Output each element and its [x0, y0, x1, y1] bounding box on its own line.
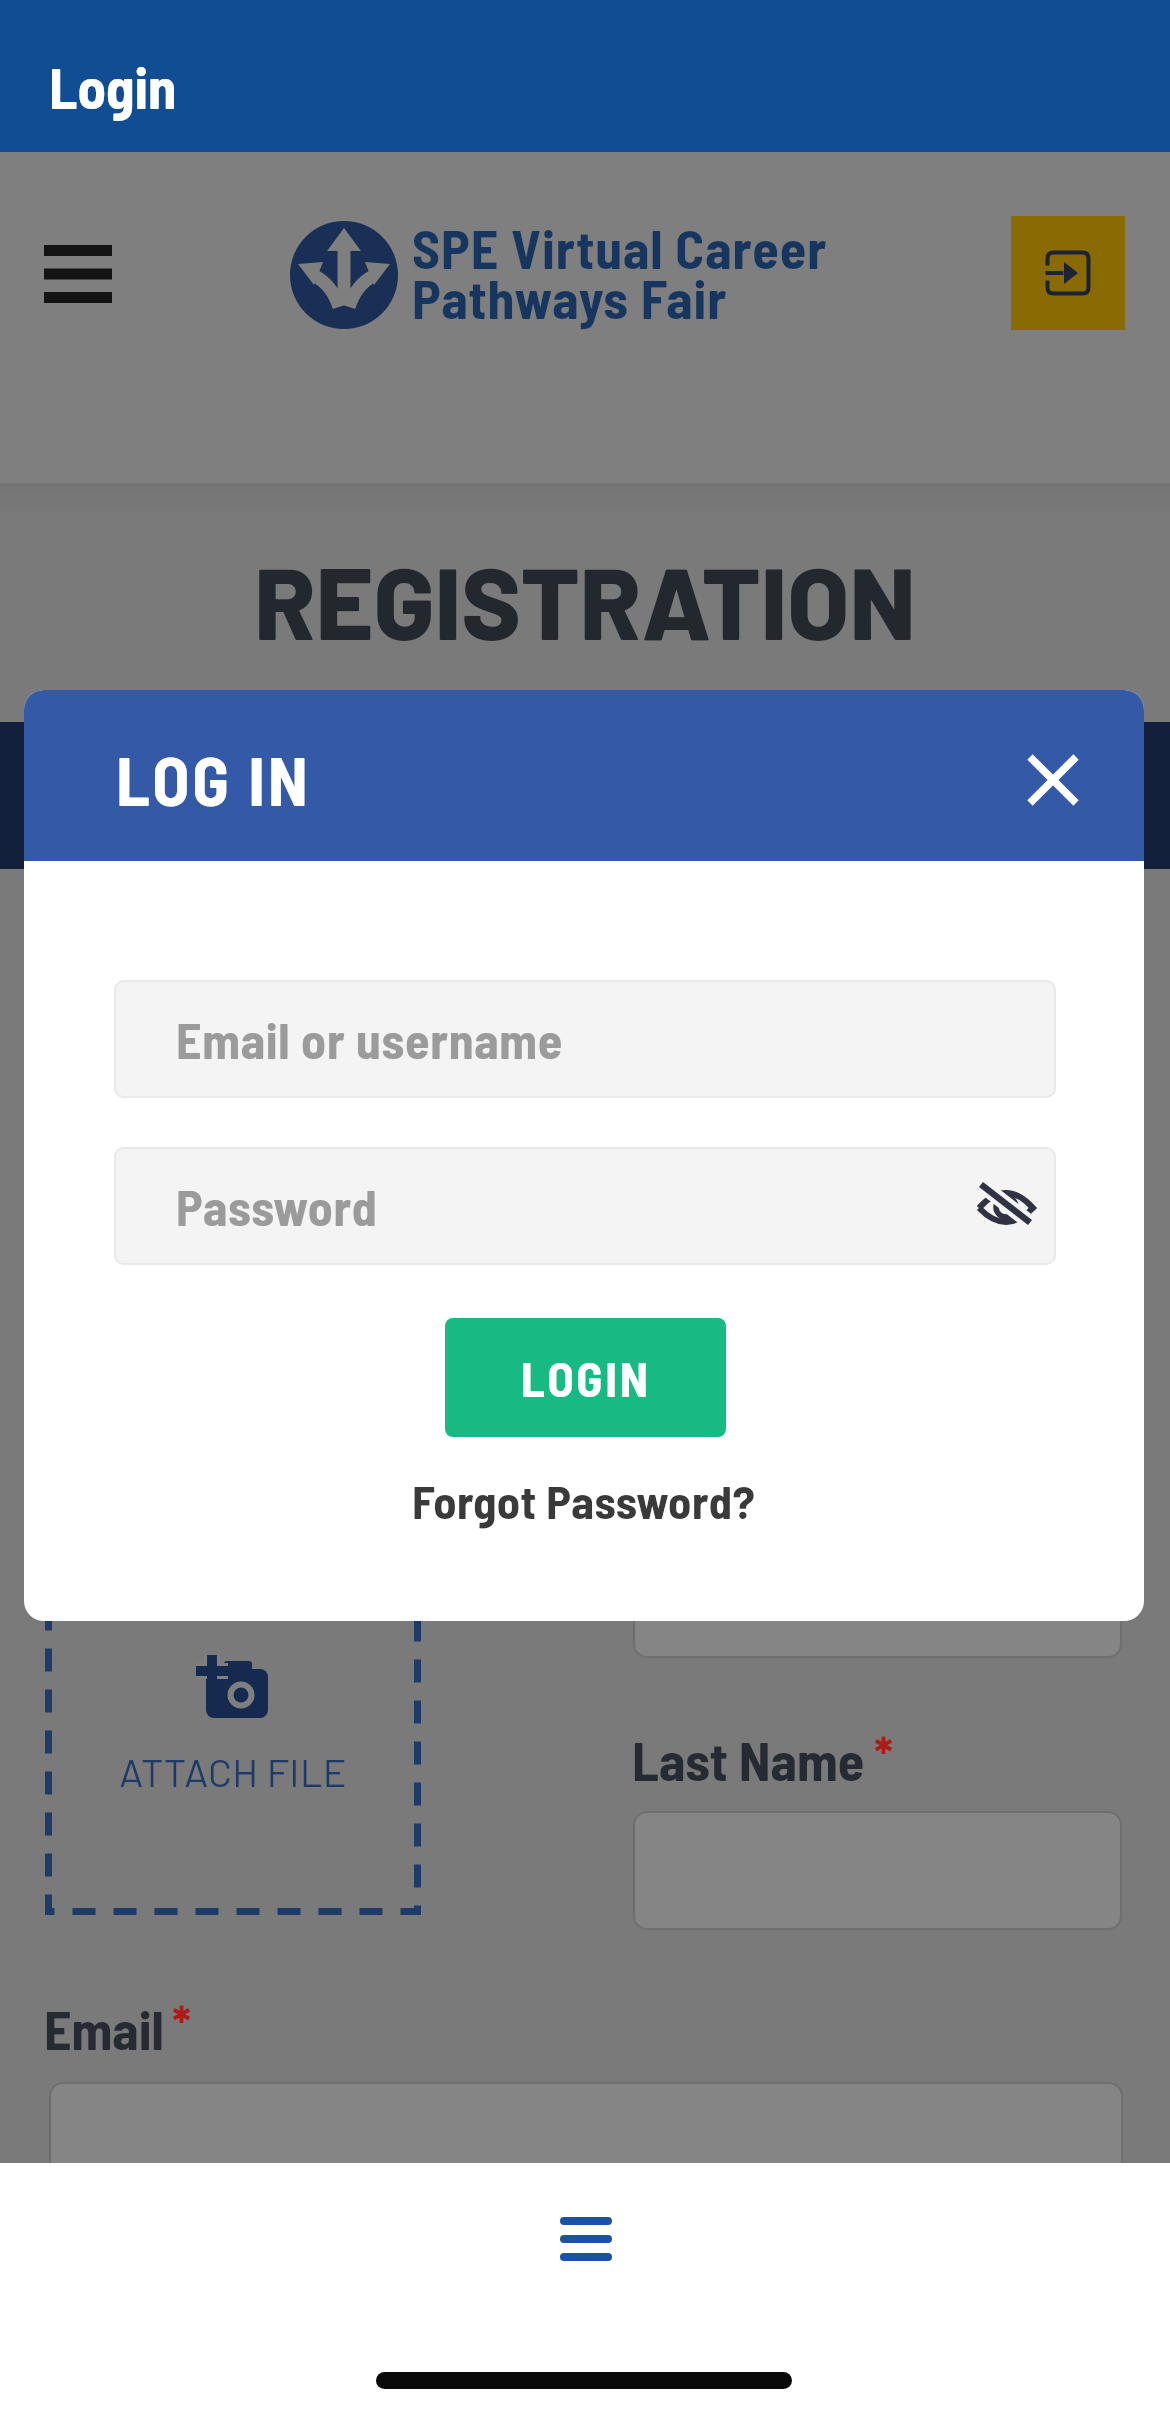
staticText: Forgot Password?	[412, 1472, 756, 1528]
button[interactable]	[45, 1492, 421, 1915]
button[interactable]: Forgot Password?	[24, 1472, 1144, 1528]
staticText: *	[874, 1724, 893, 1784]
staticText: Email	[44, 1996, 164, 2061]
staticText: *	[172, 1993, 191, 2053]
staticText: SPE Virtual Career Pathways Fair	[412, 215, 828, 329]
staticText: Email or username	[176, 1009, 564, 1069]
staticText: Login	[49, 52, 177, 120]
button[interactable]: Email or username	[114, 980, 1056, 1098]
button[interactable]	[1011, 216, 1125, 330]
staticText: LOGIN	[521, 1349, 651, 1407]
button[interactable]: LOGIN	[445, 1318, 726, 1437]
button[interactable]	[44, 245, 112, 305]
staticText: Password	[176, 1176, 378, 1236]
button[interactable]: Password	[114, 1147, 1056, 1265]
staticText: REGISTRATION	[0, 540, 1170, 660]
staticText: ATTACH FILE	[45, 1747, 421, 1807]
button[interactable]	[546, 2201, 626, 2277]
button[interactable]	[1013, 740, 1093, 820]
staticText: LOG IN	[116, 738, 311, 820]
staticText: Last Name	[632, 1727, 865, 1792]
